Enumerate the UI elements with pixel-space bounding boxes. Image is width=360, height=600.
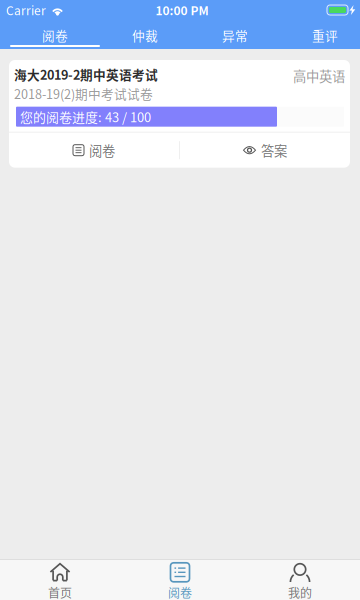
staticText: 重评 — [312, 26, 338, 44]
staticText: 10:00 PM — [155, 1, 208, 19]
staticText: 阅卷 — [42, 26, 68, 44]
button[interactable]: 异常 — [190, 20, 280, 49]
staticText: 阅卷 — [168, 584, 192, 600]
staticText: 2018-19(2)期中考试试卷 — [14, 84, 153, 103]
staticText: 首页 — [48, 584, 72, 600]
staticText: 阅卷 — [89, 140, 115, 160]
staticText: 答案 — [261, 140, 287, 160]
button[interactable]: 重评 — [280, 20, 360, 49]
staticText: 海大2019-2期中英语考试 — [14, 65, 158, 83]
button[interactable]: 阅卷 — [10, 20, 100, 49]
staticText: 您的阅卷进度: 43 / 100 — [20, 107, 151, 126]
button[interactable]: 我的 — [240, 563, 360, 600]
button[interactable]: 阅卷 — [120, 563, 240, 600]
button[interactable]: 答案 — [180, 133, 350, 168]
staticText: 仲裁 — [132, 26, 158, 44]
button[interactable]: 阅卷 — [9, 133, 179, 168]
button[interactable]: 首页 — [0, 563, 120, 600]
staticText: 异常 — [222, 26, 248, 44]
button[interactable]: 仲裁 — [100, 20, 190, 49]
staticText: Carrier — [6, 1, 46, 19]
staticText: 高中英语 — [293, 66, 345, 85]
staticText: 我的 — [288, 584, 312, 600]
